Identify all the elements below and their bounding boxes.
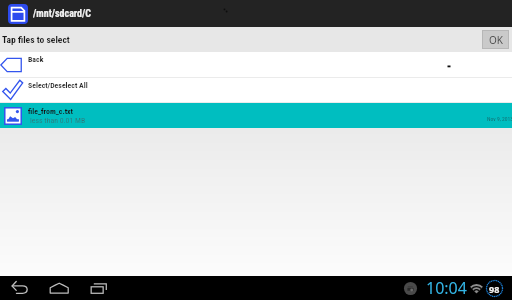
staticText: less than 0.01 MB [30,116,86,125]
staticText: Back [28,55,44,64]
staticText: OK [489,33,503,47]
button[interactable]: file_from_c.txt [0,103,512,128]
button[interactable]: Up, /mnt/sdcard/C [8,4,28,24]
staticText: Nov 9, 2013 [487,116,512,123]
staticText: 10:04 [426,277,467,299]
staticText: /mnt/sdcard/C [33,8,92,20]
staticText: Tap files to select [2,34,70,45]
button[interactable]: Back [0,52,512,78]
button[interactable]: OK [482,30,509,49]
staticText: Select/Deselect All [28,81,88,90]
button[interactable]: Select/Deselect All [0,78,512,103]
button[interactable]: Home [49,276,73,300]
button[interactable]: Back [10,276,34,300]
button[interactable]: Recent apps [89,276,113,300]
staticText: 98 [489,283,500,295]
staticText: file_from_c.txt [28,107,74,116]
